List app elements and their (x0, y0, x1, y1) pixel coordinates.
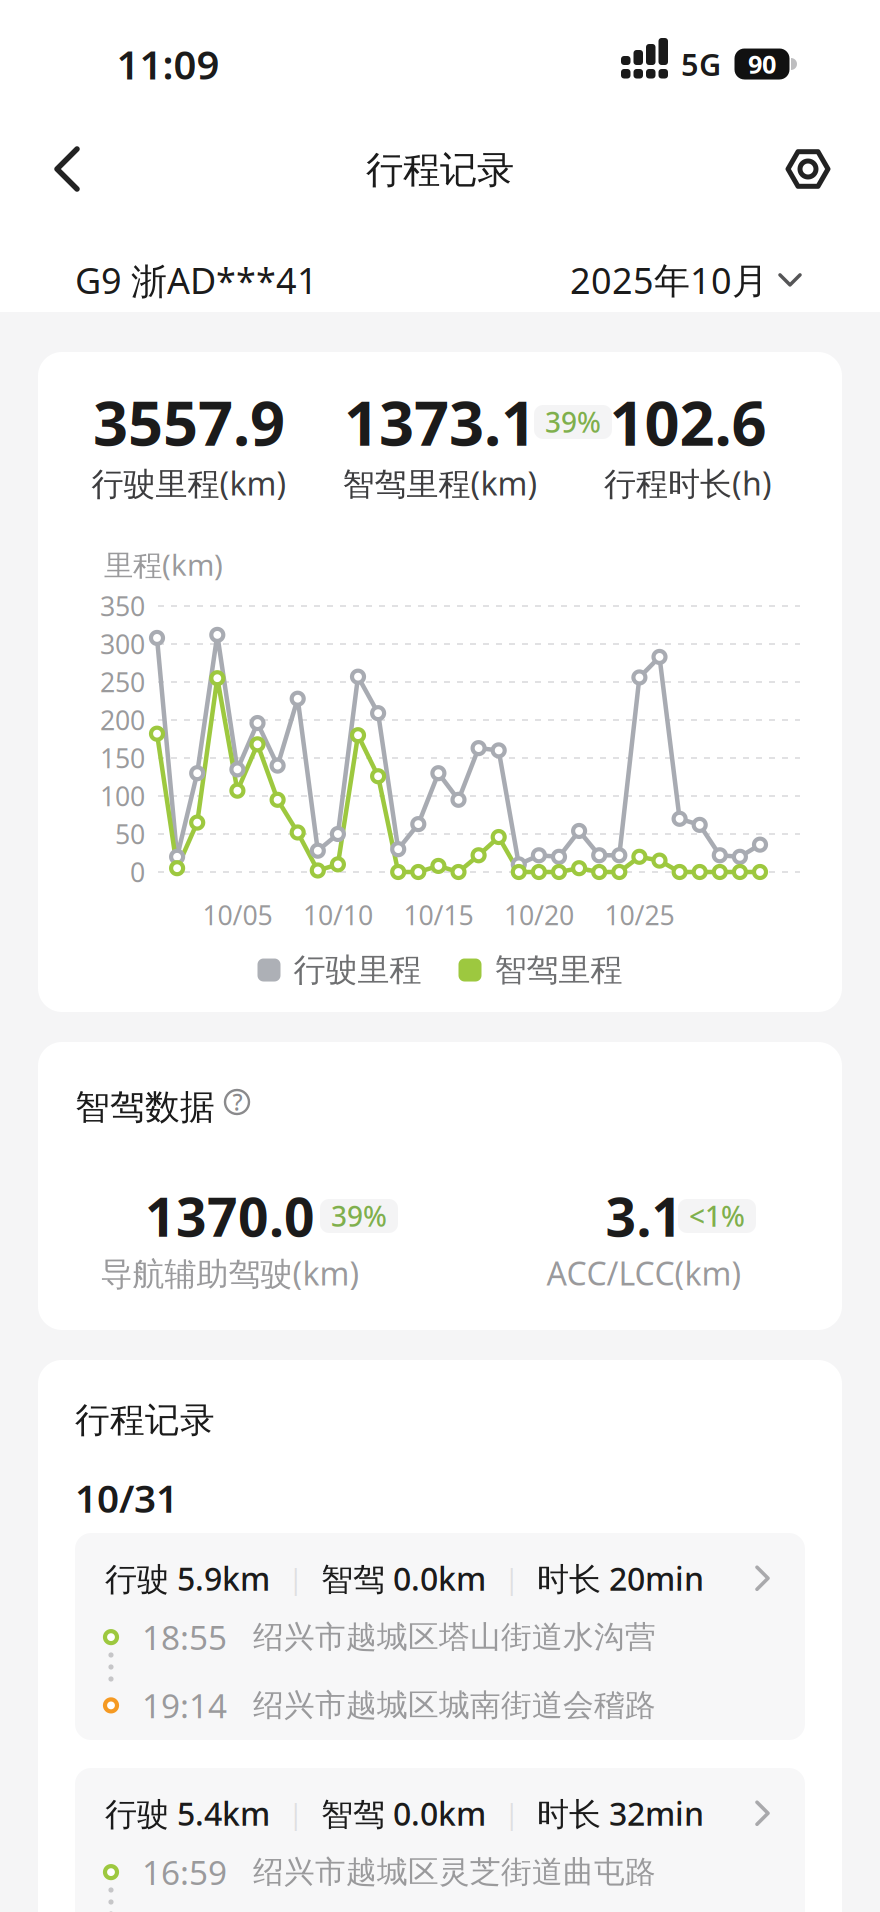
staticText: 100 (100, 778, 145, 814)
staticText: 150 (100, 740, 145, 776)
staticText: 250 (100, 664, 145, 700)
staticText: 绍兴市越城区塔山街道水沟营 (253, 1618, 656, 1656)
staticText: 智驾 0.0km (321, 1792, 486, 1834)
staticText: 10/31 (75, 1472, 178, 1523)
staticText: 行驶 5.9km (105, 1557, 270, 1599)
button[interactable]: Back (32, 135, 102, 203)
staticText: 3.1 (605, 1181, 682, 1251)
staticText: 1373.1 (344, 381, 536, 463)
staticText: 时长 32min (537, 1792, 704, 1834)
staticText: 智驾里程(km) (342, 462, 537, 504)
staticText: 200 (100, 702, 145, 738)
staticText: 智驾 0.0km (321, 1557, 486, 1599)
staticText: 行驶里程 (293, 950, 421, 990)
staticText: 智驾数据 (75, 1086, 215, 1129)
staticText: 绍兴市越城区灵芝街道曲屯路 (253, 1853, 656, 1891)
staticText: G9 浙AD***41 (75, 256, 318, 304)
button[interactable]: 行驶 5.9km (75, 1533, 805, 1740)
staticText: 智驾里程 (494, 950, 622, 990)
staticText: 里程(km) (104, 545, 223, 584)
staticText: 10/25 (604, 897, 674, 933)
staticText: 5G (681, 44, 721, 84)
staticText: 时长 20min (537, 1557, 704, 1599)
staticText: 10/05 (202, 897, 272, 933)
staticText: | (288, 1795, 303, 1832)
staticText: 0 (130, 854, 145, 890)
button[interactable]: 行驶 5.4km (75, 1768, 805, 1912)
staticText: 300 (100, 626, 145, 662)
staticText: 39% (331, 1197, 387, 1235)
staticText: 行程时长(h) (604, 462, 772, 504)
staticText: | (288, 1560, 303, 1597)
staticText: 10/20 (504, 897, 574, 933)
staticText: 1370.0 (145, 1181, 315, 1251)
staticText: <1% (689, 1197, 745, 1235)
staticText: 2025年10月 (570, 256, 768, 304)
staticText: 50 (115, 816, 145, 852)
staticText: 350 (100, 588, 145, 624)
staticText: 11:09 (116, 37, 219, 90)
staticText: 10/10 (303, 897, 373, 933)
staticText: | (504, 1560, 519, 1597)
button[interactable]: Settings (775, 136, 841, 202)
staticText: 行驶里程(km) (91, 462, 286, 504)
staticText: 3557.9 (93, 381, 285, 463)
staticText: 102.6 (609, 381, 766, 463)
staticText: 90 (748, 47, 776, 81)
staticText: 行驶 5.4km (105, 1792, 270, 1834)
button[interactable]: 2025年10月 (570, 256, 802, 304)
staticText: 18:55 (142, 1615, 227, 1659)
staticText: 16:59 (142, 1850, 227, 1894)
staticText: 行程记录 (366, 147, 514, 193)
staticText: 行程记录 (75, 1399, 215, 1442)
staticText: 绍兴市越城区城南街道会稽路 (253, 1687, 656, 1724)
staticText: | (504, 1795, 519, 1832)
staticText: ACC/LCC(km) (546, 1252, 741, 1294)
button[interactable]: Help (223, 1088, 251, 1116)
staticText: 19:14 (142, 1683, 227, 1728)
staticText: 39% (545, 403, 601, 441)
staticText: 导航辅助驾驶(km) (100, 1252, 359, 1294)
staticText: 10/15 (403, 897, 473, 933)
staticText: ? (232, 1087, 242, 1117)
